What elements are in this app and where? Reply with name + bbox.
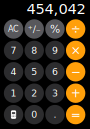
staticText: 454,042	[26, 0, 85, 18]
staticText: 1	[11, 88, 17, 99]
staticText: %	[50, 23, 60, 35]
button[interactable]: 8	[24, 40, 45, 61]
staticText: −	[71, 65, 81, 79]
button[interactable]: +	[65, 82, 86, 104]
button[interactable]: 3	[45, 82, 65, 104]
button[interactable]: 2	[24, 82, 45, 104]
staticText: 5	[31, 66, 37, 77]
staticText: 0	[31, 109, 37, 120]
button[interactable]: .	[45, 104, 65, 125]
staticText: AC	[8, 24, 19, 34]
staticText: .	[53, 109, 56, 120]
button[interactable]: 7	[3, 40, 24, 61]
button[interactable]: AC	[3, 18, 24, 40]
staticText: 7	[11, 45, 17, 56]
button[interactable]: 1	[3, 82, 24, 104]
button[interactable]: 5	[24, 61, 45, 82]
button[interactable]: 0	[24, 104, 45, 125]
staticText: 2	[31, 88, 37, 99]
staticText: 8	[31, 45, 37, 56]
button[interactable]: %	[45, 18, 65, 40]
staticText: 6	[52, 66, 58, 77]
staticText: +	[71, 86, 81, 100]
button[interactable]: ×	[65, 40, 86, 61]
button[interactable]: 6	[45, 61, 65, 82]
button[interactable]: −	[65, 61, 86, 82]
button[interactable]: ⁺∕₋	[24, 18, 45, 40]
button[interactable]: 9	[45, 40, 65, 61]
staticText: 9	[52, 45, 58, 56]
button[interactable]: 4	[3, 61, 24, 82]
staticText: =	[71, 108, 81, 122]
button[interactable]: Calculator mode	[3, 104, 24, 125]
staticText: ×	[71, 43, 81, 57]
button[interactable]: =	[65, 104, 86, 125]
staticText: 3	[52, 88, 58, 99]
button[interactable]: ÷	[65, 18, 86, 40]
staticText: ÷	[71, 22, 81, 36]
staticText: 4	[11, 66, 17, 77]
staticText: ⁺∕₋	[28, 24, 41, 34]
